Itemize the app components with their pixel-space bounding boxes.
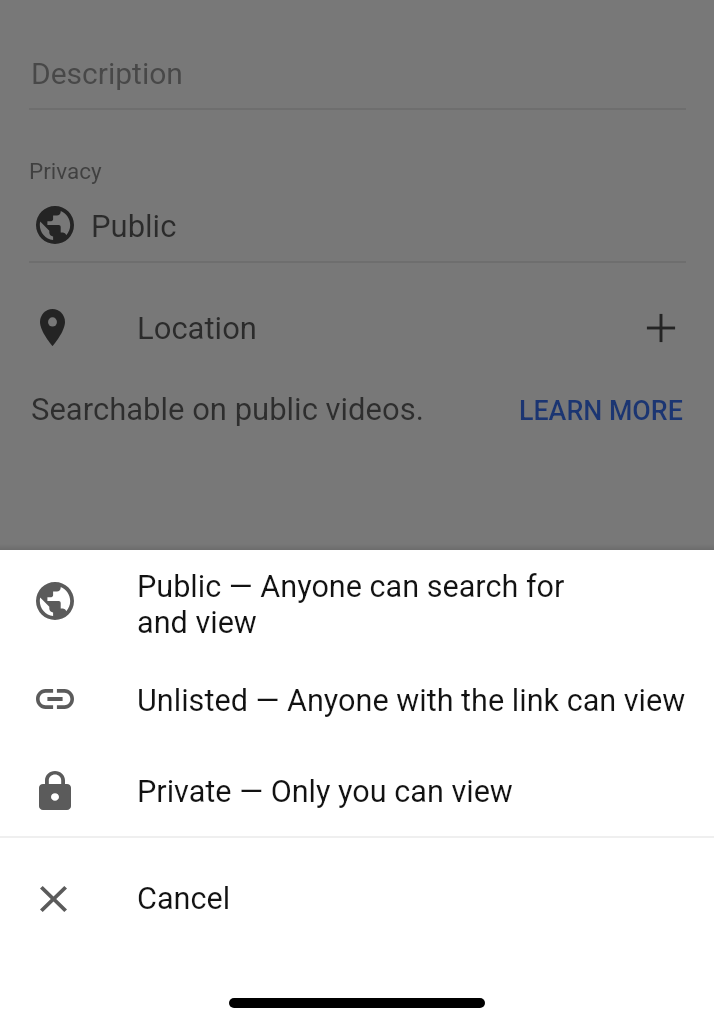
staticText: Public xyxy=(91,208,177,244)
button[interactable]: Add location xyxy=(640,307,682,349)
staticText: LEARN MORE xyxy=(519,395,683,426)
staticText: Location xyxy=(137,310,257,346)
staticText: Description xyxy=(31,56,183,91)
button[interactable]: Location xyxy=(0,296,714,360)
button[interactable]: Private — Only you can view xyxy=(0,746,714,838)
staticText: Private — Only you can view xyxy=(137,774,697,810)
staticText: Privacy xyxy=(29,158,102,184)
staticText: Public — Anyone can search for and view xyxy=(137,569,587,641)
button[interactable]: Cancel xyxy=(0,853,714,945)
button[interactable]: LEARN MORE xyxy=(506,385,670,435)
button[interactable]: Public — Anyone can search for and view xyxy=(0,550,714,660)
button[interactable]: Unlisted — Anyone with the link can view xyxy=(0,655,714,747)
staticText: Searchable on public videos. xyxy=(31,391,424,427)
button[interactable]: Public xyxy=(0,192,714,258)
staticText: Unlisted — Anyone with the link can view xyxy=(137,683,697,719)
staticText: Cancel xyxy=(137,881,537,917)
